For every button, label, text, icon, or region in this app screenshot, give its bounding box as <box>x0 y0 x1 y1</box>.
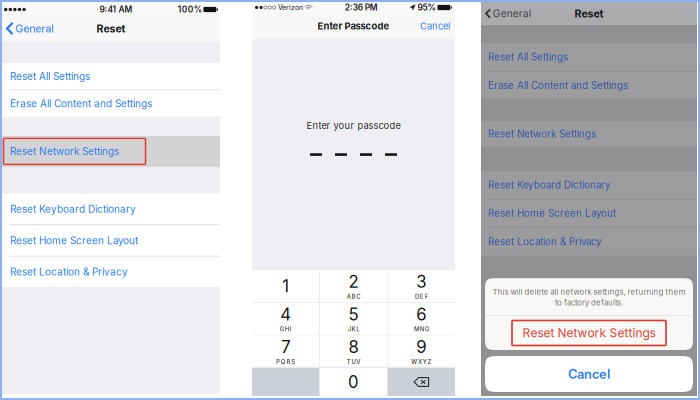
staticText: 2 <box>348 272 358 292</box>
staticText: WXYZ <box>411 358 432 365</box>
button[interactable]: 7 <box>252 335 319 367</box>
button[interactable]: Cancel <box>420 13 455 39</box>
button[interactable]: Reset Network Settings <box>2 136 220 167</box>
button[interactable]: 2 <box>320 270 387 302</box>
button[interactable]: Reset Home Screen Layout <box>2 225 220 256</box>
staticText: 9 <box>416 337 426 357</box>
staticText: Reset All Settings <box>488 51 568 63</box>
staticText: General <box>493 7 531 20</box>
staticText: Reset <box>574 7 603 20</box>
staticText: Verizon <box>278 3 303 12</box>
button[interactable]: Reset Keyboard Dictionary <box>2 194 220 224</box>
staticText: 5 <box>348 304 358 324</box>
staticText: 8 <box>348 337 358 357</box>
button[interactable]: Cancel <box>481 356 697 392</box>
staticText: 1 <box>282 276 289 296</box>
button[interactable]: General <box>481 2 531 25</box>
staticText: Erase All Content and Settings <box>488 79 628 91</box>
staticText: 2:36 PM <box>345 2 378 13</box>
staticText: PQRS <box>276 358 295 365</box>
staticText: 100% <box>178 4 202 15</box>
button[interactable]: Reset Home Screen Layout <box>481 200 697 227</box>
button[interactable]: Erase All Content and Settings <box>2 90 220 117</box>
staticText: 9:41 AM <box>99 4 132 15</box>
staticText: JKL <box>348 326 359 333</box>
button[interactable]: Reset Keyboard Dictionary <box>481 171 697 199</box>
button[interactable]: Delete <box>388 368 455 396</box>
staticText: Enter Passcode <box>317 20 389 32</box>
button[interactable]: Reset Network Settings <box>485 316 693 350</box>
button[interactable]: 6 <box>388 303 455 335</box>
staticText: Reset Keyboard Dictionary <box>10 203 136 215</box>
staticText: Reset <box>96 22 125 35</box>
button[interactable]: Erase All Content and Settings <box>481 72 697 99</box>
staticText: 6 <box>416 304 426 324</box>
staticText: Reset Location & Privacy <box>488 236 601 248</box>
button[interactable]: Reset Network Settings <box>481 121 697 147</box>
staticText: General <box>15 22 54 35</box>
button[interactable]: Reset Location & Privacy <box>2 257 220 287</box>
staticText: Reset All Settings <box>10 70 90 82</box>
button[interactable]: 3 <box>388 270 455 302</box>
button[interactable]: Reset Location & Privacy <box>481 228 697 256</box>
staticText: Reset Network Settings <box>10 145 119 157</box>
staticText: Cancel <box>568 366 610 382</box>
staticText: Reset Home Screen Layout <box>488 207 616 219</box>
staticText: Reset Network Settings <box>488 128 596 140</box>
button[interactable]: Reset All Settings <box>481 43 697 71</box>
button[interactable]: 1 <box>252 270 319 302</box>
staticText: MNO <box>414 326 429 333</box>
staticText: Erase All Content and Settings <box>10 98 152 110</box>
staticText: Enter your passcode <box>306 120 400 131</box>
staticText: 7 <box>281 337 290 357</box>
staticText: 95% <box>418 2 436 13</box>
staticText: Cancel <box>420 20 450 32</box>
button[interactable]: Reset All Settings <box>2 63 220 89</box>
staticText: 4 <box>280 304 291 324</box>
staticText: TUV <box>347 358 360 365</box>
staticText: Reset Keyboard Dictionary <box>488 179 610 191</box>
button[interactable]: 0 <box>320 368 387 396</box>
staticText: DEF <box>415 293 428 300</box>
button[interactable]: General <box>2 15 54 42</box>
button[interactable]: 4 <box>252 303 319 335</box>
staticText: GHI <box>280 326 291 333</box>
staticText: Reset Home Screen Layout <box>10 234 138 247</box>
staticText: 3 <box>416 272 426 292</box>
staticText: ABC <box>347 293 360 300</box>
staticText: Reset Location & Privacy <box>10 266 128 278</box>
staticText: to factory defaults. <box>555 298 623 307</box>
staticText: 0 <box>348 372 359 392</box>
staticText: Reset Network Settings <box>522 326 655 340</box>
button[interactable]: 5 <box>320 303 387 335</box>
staticText: This will delete all network settings, r… <box>492 287 685 297</box>
button[interactable]: 9 <box>388 335 455 367</box>
button[interactable]: 8 <box>320 335 387 367</box>
